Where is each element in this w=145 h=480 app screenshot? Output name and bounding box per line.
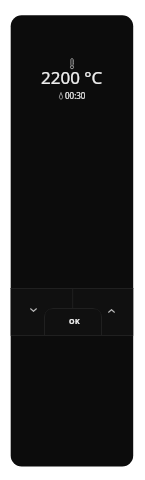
- staticText: OK: [69, 317, 81, 327]
- staticText: 2200 °C: [41, 66, 103, 89]
- button[interactable]: Decrease temperature: [11, 289, 73, 335]
- button[interactable]: OK: [44, 308, 102, 335]
- staticText: 00:30: [65, 90, 86, 101]
- button[interactable]: Increase temperature: [73, 289, 133, 335]
